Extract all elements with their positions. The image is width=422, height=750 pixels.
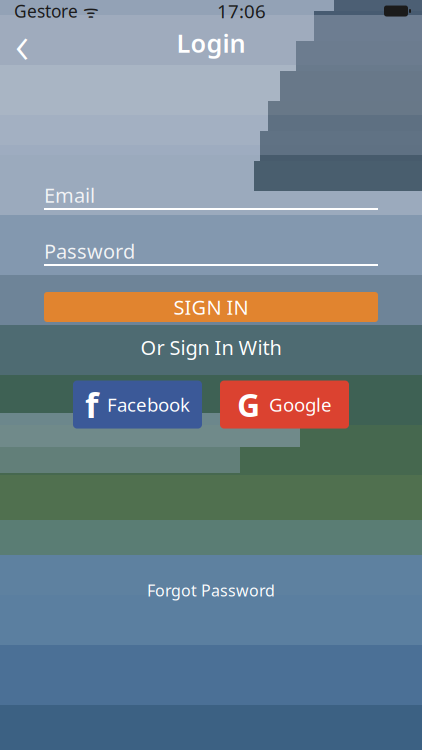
staticText: f (85, 381, 98, 427)
staticText: G (237, 383, 260, 426)
staticText: Email (44, 182, 95, 208)
staticText: ᯤ (78, 0, 99, 22)
staticText: Password (44, 238, 135, 264)
staticText: Forgot Password (147, 580, 275, 601)
staticText: ‹ (15, 8, 29, 78)
staticText: Login (176, 26, 245, 60)
staticText: 17:06 (217, 0, 266, 23)
button[interactable]: Forgot Password (131, 574, 291, 607)
button[interactable]: f (73, 381, 202, 429)
button[interactable]: SIGN IN (44, 292, 378, 322)
button[interactable]: G (220, 381, 349, 429)
staticText: SIGN IN (173, 294, 248, 320)
button[interactable]: Back (0, 23, 44, 63)
staticText: Google (269, 392, 332, 417)
staticText: Gestore (14, 0, 78, 22)
staticText: Facebook (107, 392, 190, 417)
staticText: Or Sign In With (140, 334, 281, 361)
